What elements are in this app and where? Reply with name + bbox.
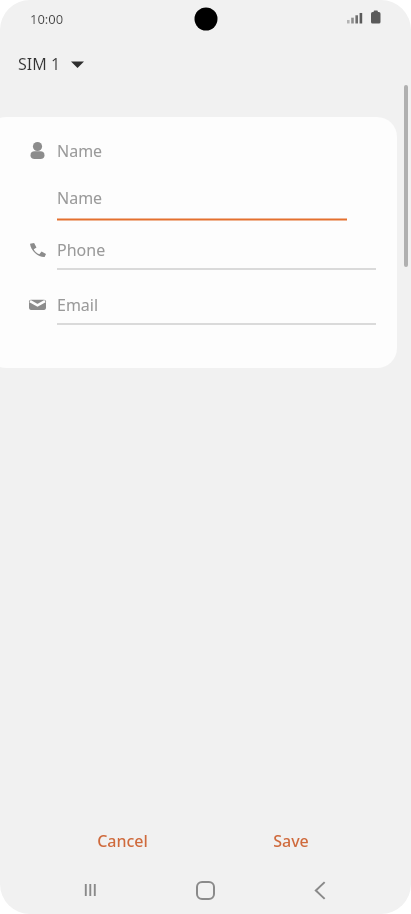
button[interactable]: Save xyxy=(259,821,323,861)
button[interactable]: Home xyxy=(181,866,229,914)
button[interactable]: Email xyxy=(0,288,397,338)
button[interactable]: Recents xyxy=(68,867,114,913)
staticText: Save xyxy=(273,830,309,852)
button[interactable]: SIM 1 xyxy=(8,47,94,81)
staticText: Name xyxy=(57,140,103,162)
button[interactable]: Phone xyxy=(0,233,397,283)
staticText: Phone xyxy=(57,239,106,261)
button[interactable]: Back xyxy=(297,867,343,913)
other: Phone xyxy=(29,242,46,257)
button[interactable]: Name xyxy=(57,181,347,221)
other: Email xyxy=(29,297,46,312)
staticText: Cancel xyxy=(97,830,148,852)
staticText: 10:00 xyxy=(30,10,64,28)
staticText: SIM 1 xyxy=(18,53,61,75)
staticText: Name xyxy=(57,187,103,209)
staticText: Email xyxy=(57,294,99,316)
button[interactable]: Cancel xyxy=(83,821,162,861)
